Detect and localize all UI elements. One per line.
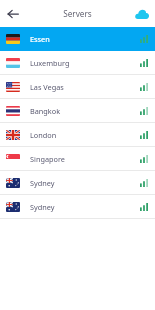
button[interactable]: Las Vegas — [0, 75, 155, 99]
staticText: Singapore — [30, 154, 140, 164]
staticText: Sydney — [30, 202, 140, 212]
staticText: London — [30, 130, 140, 140]
staticText: Las Vegas — [30, 82, 140, 92]
button[interactable]: Luxemburg — [0, 51, 155, 75]
staticText: Luxemburg — [30, 58, 140, 68]
button[interactable]: Cloud — [129, 0, 155, 27]
button[interactable]: Sydney — [0, 195, 155, 219]
staticText: Sydney — [30, 178, 140, 188]
button[interactable]: Essen — [0, 27, 155, 51]
button[interactable]: Bangkok — [0, 99, 155, 123]
staticText: Essen — [30, 34, 140, 44]
button[interactable]: Singapore — [0, 147, 155, 171]
button[interactable]: Back — [0, 0, 26, 27]
button[interactable]: Sydney — [0, 171, 155, 195]
staticText: Servers — [63, 8, 92, 19]
button[interactable]: London — [0, 123, 155, 147]
staticText: Bangkok — [30, 106, 140, 116]
